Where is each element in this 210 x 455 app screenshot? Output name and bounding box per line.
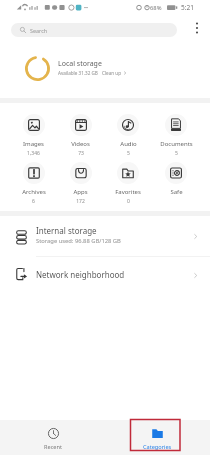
staticText: Available 31.32 GB xyxy=(58,70,98,76)
button[interactable]: Categories xyxy=(105,420,210,455)
button[interactable]: Apps xyxy=(57,162,104,205)
button[interactable]: More options xyxy=(189,20,205,36)
button[interactable]: Documents xyxy=(152,114,200,157)
button[interactable]: Archives xyxy=(10,162,57,205)
button[interactable]: Local storage xyxy=(0,45,210,93)
staticText: 73 xyxy=(78,150,84,157)
staticText: Network neighborhood xyxy=(36,269,125,280)
staticText: Recent xyxy=(44,443,62,451)
staticText: 5:21 xyxy=(181,3,194,12)
staticText: Search xyxy=(30,27,48,34)
staticText: Apps xyxy=(73,188,88,196)
staticText: Storage used: 96.88 GB/128 GB xyxy=(36,237,121,245)
staticText: Audio xyxy=(120,140,137,148)
staticText: 5 xyxy=(127,150,130,157)
staticText: Internal storage xyxy=(36,225,97,236)
staticText: Videos xyxy=(71,140,90,148)
staticText: Images xyxy=(23,140,44,148)
staticText: Categories xyxy=(143,443,172,451)
staticText: 1,346 xyxy=(27,150,40,157)
staticText: Documents xyxy=(160,140,193,148)
button[interactable]: Safe xyxy=(152,162,200,205)
button[interactable]: Audio xyxy=(104,114,152,157)
staticText: Clean up xyxy=(102,70,121,76)
staticText: 5 xyxy=(175,150,178,157)
button[interactable]: Videos xyxy=(57,114,104,157)
staticText: Archives xyxy=(22,188,46,196)
button[interactable]: Network neighborhood xyxy=(0,260,210,290)
staticText: Local storage xyxy=(58,59,102,69)
staticText: 68% xyxy=(150,4,162,12)
staticText: Favorites xyxy=(115,188,141,196)
button[interactable]: Search xyxy=(11,23,177,37)
staticText: 6 xyxy=(32,198,35,205)
staticText: Safe xyxy=(170,188,183,196)
staticText: 0 xyxy=(127,198,130,205)
button[interactable]: Recent xyxy=(0,420,105,455)
button[interactable]: Images xyxy=(10,114,57,157)
button[interactable]: Favorites xyxy=(104,162,152,205)
staticText: 172 xyxy=(76,198,85,205)
button[interactable]: Internal storage xyxy=(0,219,210,255)
